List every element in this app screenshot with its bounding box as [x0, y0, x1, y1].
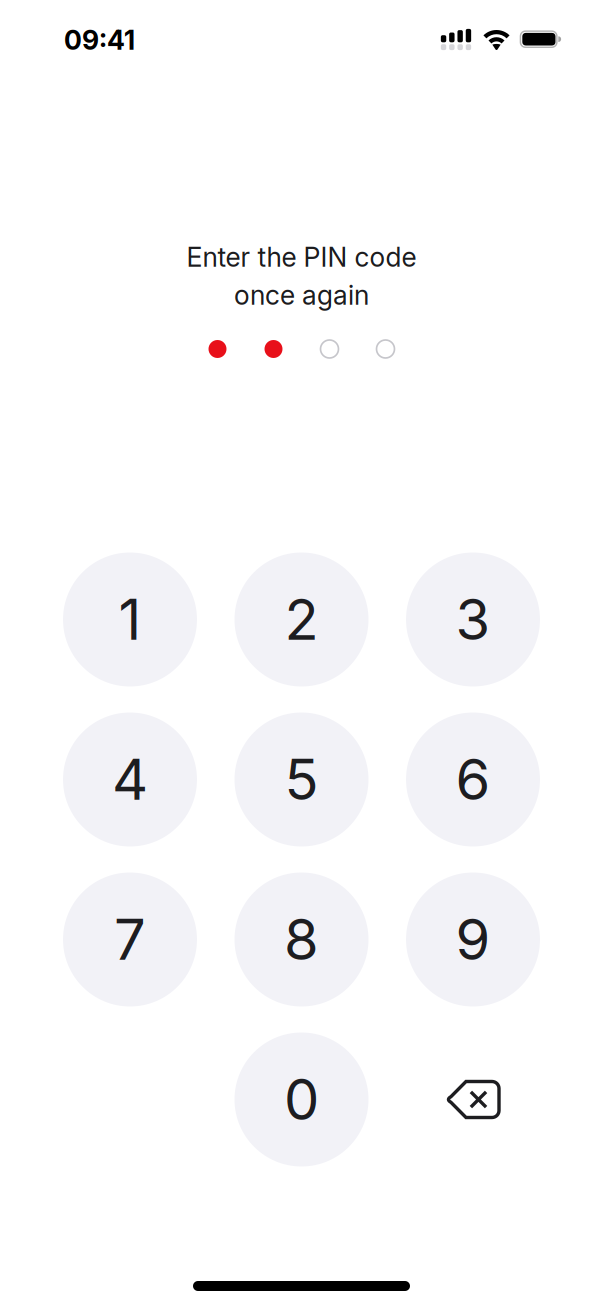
button[interactable]: 5 [234, 712, 368, 846]
staticText: once again [234, 279, 369, 311]
button[interactable]: Delete [406, 1032, 540, 1166]
button[interactable]: 3 [406, 552, 540, 686]
button[interactable]: 7 [63, 872, 197, 1006]
staticText: 2 [284, 586, 318, 653]
staticText: 7 [114, 906, 146, 973]
staticText: 5 [284, 746, 318, 813]
button[interactable]: 8 [234, 872, 368, 1006]
staticText: 6 [455, 746, 490, 813]
button[interactable]: 6 [406, 712, 540, 846]
staticText: Enter the PIN code [186, 241, 416, 273]
button[interactable]: 9 [406, 872, 540, 1006]
button[interactable]: 0 [234, 1032, 368, 1166]
staticText: 09:41 [64, 24, 135, 56]
staticText: 4 [112, 746, 148, 813]
button[interactable]: 4 [63, 712, 197, 846]
staticText: 3 [455, 586, 490, 653]
button[interactable]: 1 [63, 552, 197, 686]
staticText: 1 [118, 586, 141, 653]
button[interactable]: 2 [234, 552, 368, 686]
staticText: 0 [284, 1066, 319, 1133]
staticText: 8 [284, 906, 319, 973]
staticText: 9 [455, 906, 490, 973]
